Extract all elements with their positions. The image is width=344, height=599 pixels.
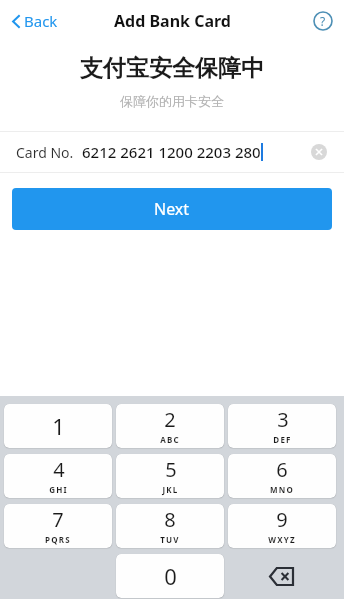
button[interactable]: 4	[4, 454, 112, 498]
button[interactable]: 5	[116, 454, 224, 498]
staticText: ?	[320, 13, 326, 29]
staticText: 8	[164, 506, 176, 533]
button[interactable]: 0	[116, 554, 224, 598]
button[interactable]: 6	[228, 454, 336, 498]
button[interactable]: 1	[4, 404, 112, 448]
button[interactable]: Next	[12, 188, 332, 230]
button[interactable]: Card No.	[0, 132, 344, 172]
staticText: 0	[164, 561, 177, 591]
staticText: 4	[53, 456, 65, 483]
button[interactable]: 2	[116, 404, 224, 448]
staticText: 7	[52, 506, 64, 533]
staticText: WXYZ	[268, 534, 296, 545]
button[interactable]: Back	[8, 7, 62, 35]
staticText: DEF	[273, 434, 292, 445]
staticText: 支付宝安全保障中	[0, 54, 344, 83]
staticText: MNO	[270, 484, 294, 495]
staticText: Next	[154, 198, 190, 220]
staticText: Card No.	[16, 143, 74, 162]
staticText: 6	[276, 456, 288, 483]
staticText: JKL	[162, 484, 179, 495]
button[interactable]: 9	[228, 504, 336, 548]
staticText: TUV	[160, 534, 180, 545]
staticText: 6212 2621 1200 2203 280	[82, 142, 261, 162]
button[interactable]: Delete	[228, 554, 336, 598]
staticText: 5	[165, 456, 177, 483]
staticText: ABC	[160, 434, 180, 445]
staticText: GHI	[49, 484, 68, 495]
button[interactable]: 3	[228, 404, 336, 448]
button[interactable]: 8	[116, 504, 224, 548]
staticText: Add Bank Card	[114, 10, 231, 32]
button[interactable]: Help	[310, 8, 336, 34]
staticText: PQRS	[45, 534, 71, 545]
staticText: 保障你的用卡安全	[0, 93, 344, 109]
staticText: 9	[276, 506, 288, 533]
button[interactable]: Clear	[308, 141, 330, 163]
staticText: 3	[277, 406, 289, 433]
button[interactable]: 7	[4, 504, 112, 548]
staticText: 2	[164, 406, 176, 433]
staticText: Back	[24, 11, 58, 31]
staticText: 1	[52, 411, 65, 441]
